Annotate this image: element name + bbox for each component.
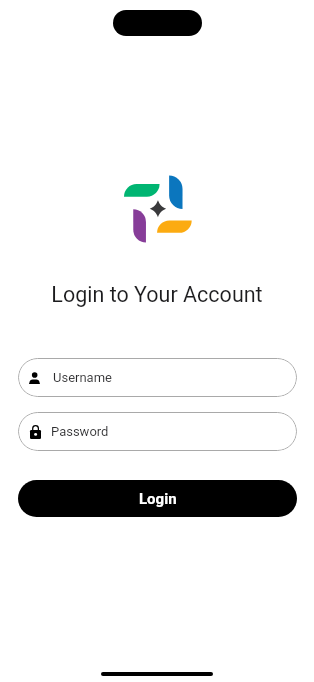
other: Username [29,372,40,384]
button[interactable]: Login [18,480,297,517]
other: Password [30,425,41,439]
button[interactable]: Password [18,412,297,451]
staticText: Login to Your Account [0,282,314,307]
staticText: Login [139,490,177,508]
staticText: Username [53,370,112,385]
button[interactable]: Username [18,358,297,397]
staticText: Password [51,424,109,439]
